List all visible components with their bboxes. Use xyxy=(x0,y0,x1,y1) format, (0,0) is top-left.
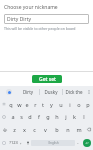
staticText: e xyxy=(25,101,29,108)
staticText: i xyxy=(69,101,71,108)
button[interactable]: w xyxy=(15,98,23,110)
button[interactable]: . xyxy=(75,136,81,149)
button[interactable]: s xyxy=(17,110,25,123)
button[interactable]: Get set xyxy=(32,75,62,83)
staticText: k xyxy=(73,113,76,120)
staticText: This will be visible to other people on … xyxy=(4,26,76,31)
staticText: t xyxy=(42,101,44,108)
button[interactable]: t xyxy=(39,98,47,110)
button[interactable]: g xyxy=(43,110,52,123)
button[interactable]: v xyxy=(40,123,51,136)
staticText: l xyxy=(83,113,85,120)
staticText: ?123 xyxy=(9,140,18,145)
button[interactable]: More suggestions xyxy=(85,86,93,98)
button[interactable]: c xyxy=(29,123,40,136)
button[interactable]: i xyxy=(65,98,74,110)
staticText: Dusky xyxy=(40,89,62,95)
staticText: Get set xyxy=(39,76,56,83)
staticText: Dirty Dirty xyxy=(7,16,32,23)
staticText: u xyxy=(59,101,63,108)
button[interactable]: Language xyxy=(0,136,8,149)
staticText: r xyxy=(34,101,37,108)
staticText: . xyxy=(77,139,79,146)
staticText: q xyxy=(9,101,13,108)
staticText: v xyxy=(44,126,47,133)
staticText: a xyxy=(11,113,15,120)
button[interactable]: o xyxy=(74,98,83,110)
button[interactable]: h xyxy=(52,110,61,123)
button[interactable]: p xyxy=(83,98,92,110)
staticText: w xyxy=(17,101,22,108)
button[interactable]: Shift xyxy=(0,123,9,136)
staticText: x xyxy=(23,126,26,133)
staticText: , xyxy=(20,139,22,146)
staticText: h xyxy=(55,113,59,120)
button[interactable]: m xyxy=(73,123,84,136)
staticText: English xyxy=(48,141,59,145)
button[interactable]: l xyxy=(79,110,88,123)
button[interactable]: y xyxy=(47,98,56,110)
button[interactable]: Enter xyxy=(83,139,91,147)
button[interactable]: Emoji xyxy=(0,98,7,110)
button[interactable]: f xyxy=(34,110,43,123)
staticText: z xyxy=(13,126,16,133)
staticText: s xyxy=(20,113,23,120)
staticText: Dirty xyxy=(17,89,39,95)
staticText: Dick the xyxy=(63,89,85,95)
button[interactable]: Google Assistant xyxy=(6,89,12,95)
button[interactable]: b xyxy=(51,123,62,136)
staticText: Choose your nickname xyxy=(4,4,58,11)
button[interactable]: ?123 xyxy=(8,136,18,149)
staticText: y xyxy=(50,101,53,108)
button[interactable]: k xyxy=(70,110,79,123)
button[interactable]: Voice input xyxy=(24,136,31,149)
button[interactable]: Dirty Dirty xyxy=(4,14,89,24)
staticText: o xyxy=(77,101,81,108)
staticText: n xyxy=(66,126,70,133)
staticText: b xyxy=(55,126,59,133)
button[interactable]: Space xyxy=(31,140,75,146)
staticText: j xyxy=(65,113,67,120)
button[interactable]: a xyxy=(9,110,17,123)
staticText: f xyxy=(38,113,40,120)
button[interactable]: Backspace xyxy=(84,123,93,136)
button[interactable]: z xyxy=(9,123,19,136)
button[interactable]: r xyxy=(31,98,39,110)
staticText: c xyxy=(33,126,36,133)
button[interactable]: e xyxy=(23,98,31,110)
button[interactable]: n xyxy=(62,123,73,136)
button[interactable]: j xyxy=(61,110,70,123)
staticText: d xyxy=(28,113,32,120)
button[interactable]: q xyxy=(7,98,15,110)
button[interactable]: u xyxy=(56,98,65,110)
button[interactable]: , xyxy=(18,136,24,149)
button[interactable]: Settings xyxy=(0,110,8,123)
staticText: p xyxy=(86,101,90,108)
button[interactable]: d xyxy=(25,110,34,123)
button[interactable]: x xyxy=(19,123,29,136)
staticText: m xyxy=(76,126,82,133)
staticText: g xyxy=(46,113,50,120)
